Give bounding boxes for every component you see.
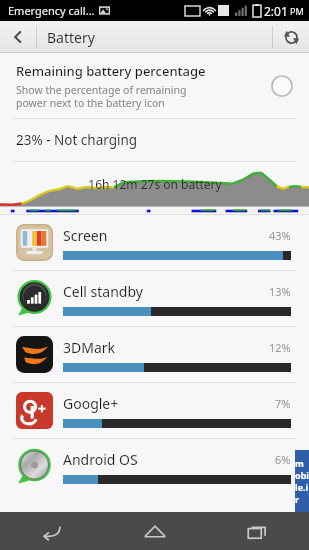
staticText: Google+ bbox=[63, 394, 275, 413]
button[interactable]: 23% - Not charging bbox=[0, 119, 309, 161]
button[interactable]: Screen bbox=[0, 215, 309, 270]
staticText: Android OS bbox=[63, 450, 275, 469]
staticText: 13% bbox=[269, 284, 291, 299]
button[interactable]: Back bbox=[0, 21, 36, 53]
staticText: 43% bbox=[269, 228, 291, 243]
button[interactable]: 3DMark bbox=[0, 327, 309, 382]
staticText: 6% bbox=[275, 452, 291, 467]
button[interactable]: Home bbox=[103, 512, 206, 550]
staticText: PM bbox=[290, 5, 304, 17]
button[interactable]: Google+ bbox=[0, 383, 309, 438]
staticText: 2:01 bbox=[264, 3, 288, 19]
button[interactable]: 16h 12m 27s on battery bbox=[0, 162, 309, 214]
button[interactable]: Recent apps bbox=[206, 512, 309, 550]
staticText: Screen bbox=[63, 226, 269, 245]
staticText: Show the percentage of remaining power n… bbox=[16, 83, 187, 110]
button[interactable]: Cell standby bbox=[0, 271, 309, 326]
staticText: 12% bbox=[269, 340, 291, 355]
staticText: 3DMark bbox=[63, 338, 269, 357]
button[interactable]: Remaining battery percentage bbox=[0, 53, 309, 118]
staticText: Remaining battery percentage bbox=[16, 62, 206, 80]
staticText: 16h 12m 27s on battery bbox=[88, 176, 222, 192]
button[interactable]: Refresh bbox=[273, 21, 309, 53]
button[interactable]: Back bbox=[0, 512, 103, 550]
staticText: Battery bbox=[47, 28, 95, 47]
staticText: 23% - Not charging bbox=[16, 131, 138, 149]
staticText: Cell standby bbox=[63, 282, 269, 301]
button[interactable]: Android OS bbox=[0, 439, 309, 494]
staticText: Emergency call... bbox=[8, 3, 95, 18]
staticText: mobile.ir bbox=[295, 457, 309, 505]
staticText: 7% bbox=[275, 396, 291, 411]
